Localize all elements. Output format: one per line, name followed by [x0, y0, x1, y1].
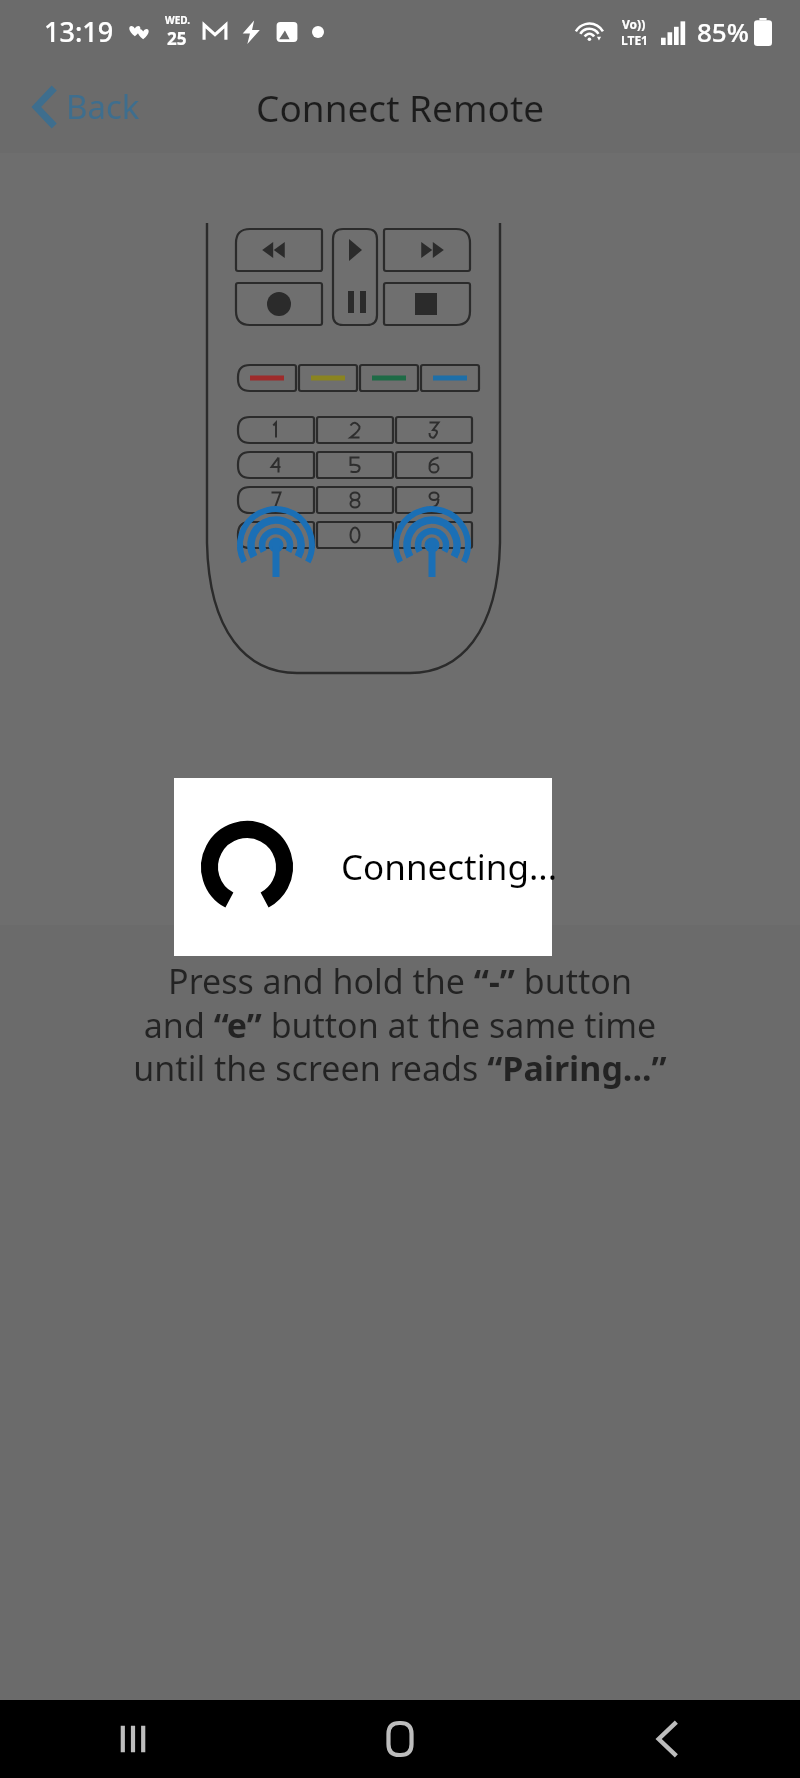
staticText: Connect Remote	[256, 82, 545, 132]
staticText: Press and hold the “-” button and “e” bu…	[24, 958, 776, 1091]
staticText: LTE1	[621, 32, 648, 48]
button[interactable]: Home	[266, 1700, 533, 1778]
staticText: Vo))	[622, 16, 646, 32]
button[interactable]: Recent apps	[0, 1700, 266, 1778]
staticText: Connecting...	[341, 843, 558, 891]
staticText: 25	[167, 27, 187, 50]
staticText: 13:19	[44, 13, 114, 50]
button[interactable]: Back	[26, 74, 148, 139]
staticText: Back	[66, 84, 140, 129]
button[interactable]: Back	[533, 1700, 800, 1778]
staticText: 85%	[697, 14, 749, 49]
button[interactable]: Connecting progress	[174, 778, 552, 956]
staticText: WED.	[165, 13, 190, 27]
other: Connecting progress	[201, 821, 293, 913]
